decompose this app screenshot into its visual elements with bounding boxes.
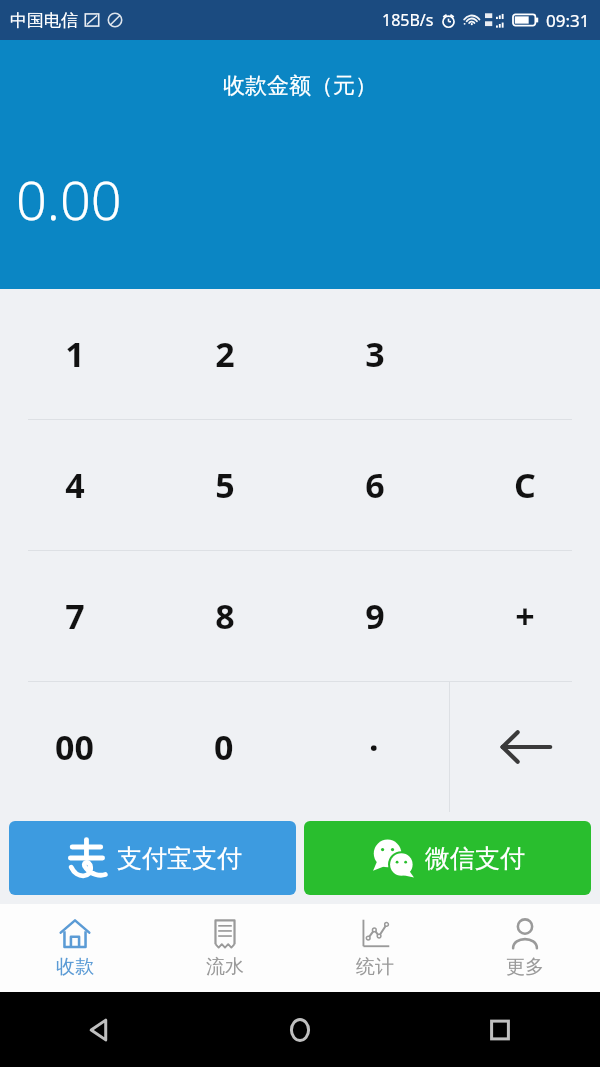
staticText: 8 xyxy=(215,593,235,639)
button[interactable]: · xyxy=(299,682,449,812)
staticText: 支付宝支付 xyxy=(117,843,242,874)
button[interactable]: Home xyxy=(200,992,400,1067)
staticText: 4 xyxy=(65,462,85,508)
staticText: 0.00 xyxy=(16,162,122,236)
button[interactable]: 统计 xyxy=(300,904,450,992)
staticText: 1 xyxy=(65,331,85,377)
staticText: 7 xyxy=(65,593,85,639)
staticText: 3 xyxy=(365,331,385,377)
button[interactable]: 0 xyxy=(149,682,299,812)
staticText: 微信支付 xyxy=(425,843,525,874)
button[interactable]: 流水 xyxy=(150,904,300,992)
button[interactable]: Backspace xyxy=(450,682,600,812)
staticText: 收款金额（元） xyxy=(223,72,377,100)
button[interactable]: Recent apps xyxy=(400,992,600,1067)
staticText: 2 xyxy=(215,331,235,377)
button[interactable]: 00 xyxy=(0,682,149,812)
staticText: + xyxy=(515,593,535,639)
button[interactable]: + xyxy=(450,551,600,681)
staticText: C xyxy=(514,462,536,508)
staticText: 6 xyxy=(365,462,385,508)
staticText: 0 xyxy=(214,724,234,770)
button[interactable]: 1 xyxy=(0,289,150,419)
button[interactable]: C xyxy=(450,420,600,550)
button[interactable]: 支付宝支付 xyxy=(9,821,296,895)
staticText: 中国电信 xyxy=(10,10,78,31)
staticText: 5 xyxy=(215,462,235,508)
button[interactable]: 更多 xyxy=(450,904,600,992)
button[interactable]: 9 xyxy=(300,551,450,681)
button[interactable]: 收款 xyxy=(0,904,150,992)
button[interactable]: 4 xyxy=(0,420,150,550)
staticText: 00 xyxy=(55,724,94,770)
button[interactable]: Back xyxy=(0,992,200,1067)
staticText: 185B/s xyxy=(382,9,434,31)
staticText: 更多 xyxy=(506,955,544,979)
button[interactable]: 微信支付 xyxy=(304,821,591,895)
button[interactable]: 7 xyxy=(0,551,150,681)
staticText: 9 xyxy=(365,593,385,639)
button[interactable]: 8 xyxy=(150,551,300,681)
button[interactable]: 5 xyxy=(150,420,300,550)
staticText: · xyxy=(369,724,379,770)
staticText: 收款 xyxy=(56,955,94,979)
button[interactable]: 2 xyxy=(150,289,300,419)
staticText: 统计 xyxy=(356,955,394,979)
staticText: 流水 xyxy=(206,955,244,979)
button[interactable]: 6 xyxy=(300,420,450,550)
button[interactable]: 3 xyxy=(300,289,450,419)
staticText: 09:31 xyxy=(546,9,590,32)
